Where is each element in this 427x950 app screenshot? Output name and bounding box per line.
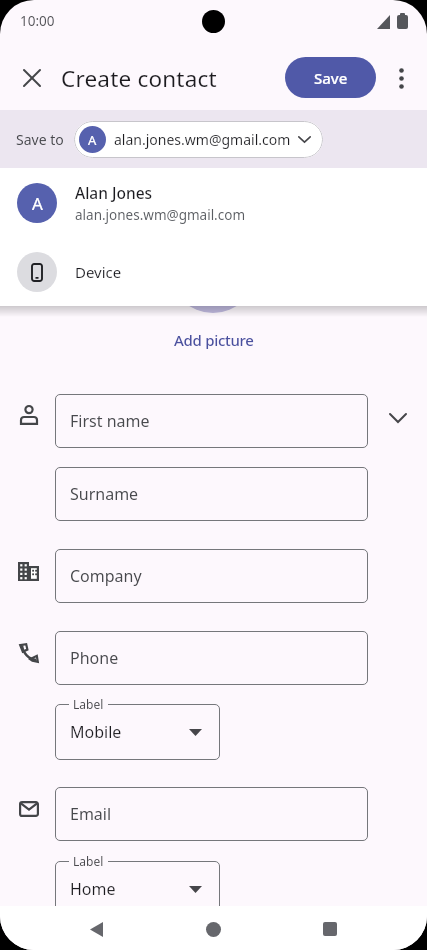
staticText: Home xyxy=(70,878,116,900)
button[interactable] xyxy=(312,916,348,942)
button[interactable]: Save xyxy=(285,57,376,98)
button[interactable] xyxy=(195,916,231,942)
button[interactable]: Add picture xyxy=(0,326,427,354)
staticText: Surname xyxy=(70,483,139,505)
staticText: Create contact xyxy=(61,63,217,94)
button[interactable]: A xyxy=(0,168,427,238)
button[interactable] xyxy=(78,916,114,942)
staticText: Company xyxy=(70,565,142,587)
button[interactable]: Home xyxy=(55,861,220,917)
staticText: A xyxy=(32,192,43,215)
staticText: Mobile xyxy=(70,721,122,743)
button[interactable]: Surname xyxy=(55,467,368,521)
staticText: Email xyxy=(70,803,112,825)
staticText: Device xyxy=(75,262,122,282)
staticText: First name xyxy=(70,410,150,432)
staticText: Label xyxy=(73,696,104,712)
button[interactable]: Company xyxy=(55,549,368,603)
button[interactable]: Email xyxy=(55,787,368,841)
button[interactable]: Phone xyxy=(55,631,368,685)
staticText: Add picture xyxy=(174,330,254,350)
button[interactable]: First name xyxy=(55,394,368,448)
button[interactable] xyxy=(384,58,418,98)
button[interactable] xyxy=(12,58,52,98)
button[interactable]: Mobile xyxy=(55,704,220,760)
staticText: alan.jones.wm@gmail.com xyxy=(75,206,246,224)
staticText: Label xyxy=(73,853,104,869)
button[interactable]: Device xyxy=(0,238,427,306)
staticText: 10:00 xyxy=(20,12,55,30)
staticText: Phone xyxy=(70,647,119,669)
staticText: alan.jones.wm@gmail.com xyxy=(114,130,291,149)
staticText: Save to xyxy=(16,130,64,149)
staticText: Save xyxy=(314,68,348,88)
staticText: Alan Jones xyxy=(75,182,153,203)
button[interactable]: A xyxy=(74,121,323,158)
staticText: A xyxy=(88,131,97,149)
